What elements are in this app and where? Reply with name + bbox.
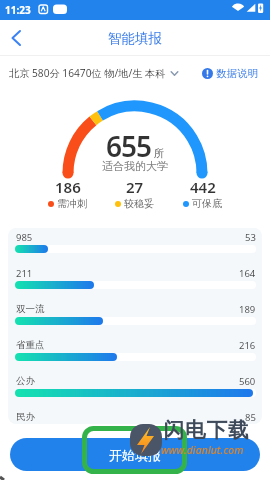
staticText: 53 — [245, 231, 256, 244]
staticText: 省重点 — [16, 339, 45, 351]
button[interactable]: 开始填报 — [10, 438, 260, 471]
staticText: 655 — [106, 127, 152, 165]
staticText: 较稳妥 — [124, 197, 154, 210]
staticText: 216 — [239, 339, 256, 352]
staticText: 85 — [245, 411, 256, 424]
staticText: 186 — [55, 177, 81, 197]
staticText: 164 — [239, 267, 256, 280]
staticText: 27 — [126, 177, 144, 197]
staticText: 211 — [16, 267, 33, 280]
staticText: 智能填报 — [108, 30, 162, 47]
button[interactable]: 985 — [8, 228, 262, 264]
staticText: 985 — [16, 231, 33, 244]
staticText: 双一流 — [16, 303, 45, 315]
staticText: 可保底 — [192, 197, 222, 210]
button[interactable] — [0, 20, 36, 56]
staticText: 闪电下载 — [163, 417, 249, 443]
button[interactable]: 公办 — [8, 372, 262, 408]
button[interactable]: 双一流 — [8, 300, 262, 336]
staticText: 需冲刺 — [57, 197, 87, 210]
staticText: 北京 580分 16470位 物/地/生 本科 — [9, 66, 166, 80]
button[interactable]: 数据说明 — [202, 56, 258, 90]
staticText: 189 — [239, 303, 256, 316]
staticText: 所 — [154, 147, 165, 160]
staticText: 11:23 — [5, 3, 31, 17]
button[interactable]: 民办 — [8, 408, 262, 424]
staticText: 数据说明 — [216, 67, 258, 80]
button[interactable]: 211 — [8, 264, 262, 300]
button[interactable]: 北京 580分 16470位 物/地/生 本科 — [9, 56, 179, 90]
staticText: 适合我的大学 — [102, 159, 168, 173]
staticText: 民办 — [16, 411, 35, 423]
staticText: 442 — [190, 177, 216, 197]
button[interactable]: 省重点 — [8, 336, 262, 372]
staticText: 560 — [239, 375, 256, 388]
staticText: 公办 — [16, 375, 35, 387]
staticText: 开始填报 — [109, 447, 161, 463]
staticText: www.dianlut.com — [161, 443, 244, 457]
